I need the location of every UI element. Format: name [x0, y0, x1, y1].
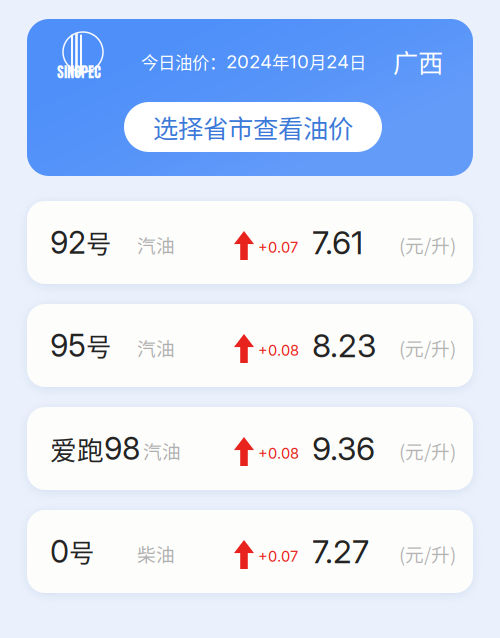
staticText: 24 — [326, 50, 349, 73]
button[interactable]: 0 — [27, 510, 473, 593]
button[interactable]: 92 — [27, 201, 473, 284]
staticText: +0.08 — [258, 342, 299, 359]
staticText: 9.36 — [312, 429, 375, 468]
staticText: 今日油价： — [141, 49, 226, 74]
staticText: 汽油 — [137, 334, 175, 361]
staticText: 号 — [86, 327, 111, 364]
staticText: (元/升) — [399, 231, 456, 258]
staticText: 0 — [50, 533, 69, 570]
staticText: 8.23 — [312, 326, 376, 365]
staticText: 号 — [86, 224, 111, 261]
staticText: (元/升) — [399, 540, 456, 567]
staticText: +0.07 — [258, 548, 298, 565]
staticText: 92 — [50, 224, 86, 261]
button[interactable]: 95 — [27, 304, 473, 387]
staticText: 7.61 — [312, 223, 363, 262]
staticText: (元/升) — [399, 437, 456, 464]
staticText: 10 — [289, 50, 309, 73]
staticText: SINOPEC — [57, 61, 101, 83]
staticText: 95 — [50, 327, 86, 364]
staticText: 汽油 — [137, 231, 175, 258]
staticText: +0.08 — [258, 445, 299, 462]
staticText: +0.07 — [258, 239, 298, 256]
button[interactable]: 爱跑 — [27, 407, 473, 490]
staticText: (元/升) — [399, 334, 456, 361]
staticText: 爱跑 — [50, 429, 104, 468]
staticText: 年 — [272, 49, 289, 74]
staticText: 柴油 — [137, 540, 175, 567]
staticText: 广西 — [393, 43, 443, 80]
button[interactable]: 选择省市查看油价 — [124, 102, 382, 152]
staticText: 汽油 — [143, 437, 181, 464]
staticText: 7.27 — [312, 532, 369, 571]
staticText: 日 — [349, 49, 366, 74]
staticText: 98 — [104, 430, 140, 467]
staticText: 月 — [309, 49, 326, 74]
staticText: 号 — [69, 533, 94, 570]
staticText: 2024 — [226, 50, 272, 73]
staticText: 选择省市查看油价 — [153, 109, 353, 145]
